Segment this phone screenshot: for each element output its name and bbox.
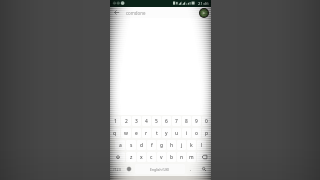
button[interactable]: e [132,128,141,138]
button[interactable]: , [185,164,197,174]
button[interactable]: Backspace [197,152,211,162]
button[interactable]: 1 [110,116,120,126]
button[interactable]: l [197,140,206,150]
staticText: n [180,154,184,161]
staticText: q [113,130,117,137]
staticText: j [181,142,183,149]
button[interactable]: q [110,128,120,138]
staticText: c [150,154,153,161]
button[interactable]: a [115,140,125,150]
button[interactable]: g [157,140,166,150]
staticText: o [195,130,198,137]
button[interactable]: v [157,152,166,162]
button[interactable]: 3 [132,116,141,126]
button[interactable]: 0 [202,116,211,126]
staticText: 6 [165,118,168,125]
staticText: i [186,130,188,137]
button[interactable]: z [126,152,136,162]
button[interactable]: n [177,152,186,162]
button[interactable]: y [162,128,171,138]
button[interactable]: x [137,152,146,162]
staticText: , [190,166,192,172]
staticText: v [160,154,163,161]
staticText: ?123 [113,167,121,172]
button[interactable]: h [167,140,176,150]
staticText: 0 [205,118,208,125]
staticText: 7 [175,118,178,125]
staticText: 8 [185,118,188,125]
button[interactable]: 4 [142,116,151,126]
staticText: l [201,142,203,149]
button[interactable]: Search [197,164,211,174]
button[interactable]: u [172,128,181,138]
staticText: d [140,142,144,149]
staticText: w [124,130,128,137]
staticText: 3 [135,118,138,125]
button[interactable]: 8 [182,116,191,126]
staticText: English (UK) [150,167,170,172]
staticText: p [205,130,209,137]
button[interactable]: b [167,152,176,162]
staticText: 5 [155,118,158,125]
staticText: 1 [114,118,117,125]
button[interactable]: c [147,152,156,162]
button[interactable]: Shift [110,152,125,162]
button[interactable]: s [126,140,136,150]
staticText: x [140,154,143,161]
staticText: h [170,142,174,149]
button[interactable]: d [137,140,146,150]
button[interactable]: Account [199,8,209,18]
button[interactable]: 9 [192,116,201,126]
button[interactable]: w [121,128,131,138]
button[interactable]: t [152,128,161,138]
button[interactable]: ?123 [110,164,123,174]
button[interactable]: p [202,128,211,138]
button[interactable]: f [147,140,156,150]
button[interactable]: j [177,140,186,150]
staticText: f [151,142,153,149]
staticText: e [135,130,138,137]
button[interactable]: o [192,128,201,138]
staticText: comdone [126,10,146,16]
button[interactable]: k [187,140,196,150]
staticText: 21:46 [198,1,209,7]
button[interactable]: m [187,152,196,162]
staticText: b [170,154,174,161]
staticText: 4 [145,118,148,125]
button[interactable]: 6 [162,116,171,126]
staticText: k [190,142,193,149]
button[interactable]: i [182,128,191,138]
button[interactable]: Back [112,8,121,17]
button[interactable]: 5 [152,116,161,126]
staticText: y [165,130,168,137]
staticText: s [130,142,133,149]
staticText: a [119,142,122,149]
button[interactable]: r [142,128,151,138]
staticText: u [175,130,179,137]
staticText: 2 [125,118,128,125]
button[interactable]: English (UK) [135,164,185,174]
button[interactable]: Emoji [123,164,135,174]
staticText: g [160,142,164,149]
staticText: t [156,130,158,137]
staticText: m [189,154,194,161]
staticText: r [145,130,148,137]
staticText: z [130,154,133,161]
staticText: 9 [195,118,198,125]
button[interactable]: 2 [121,116,131,126]
button[interactable]: 7 [172,116,181,126]
